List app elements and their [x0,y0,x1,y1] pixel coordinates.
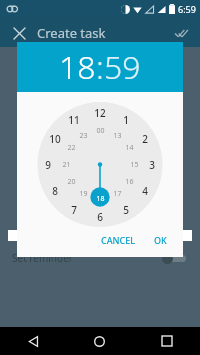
staticText: 18 [59,45,96,89]
staticText: 6:59 [178,3,196,15]
staticText: 20 [67,177,76,187]
staticText: CANCEL [101,234,136,246]
staticText: 13 [113,131,122,141]
staticText: 10 [49,132,61,146]
button[interactable]: 12 [35,102,165,227]
staticText: 18 [96,194,105,204]
staticText: 5 [123,203,129,217]
staticText: 12 [94,106,106,120]
button[interactable]: Done [170,22,192,44]
staticText: 59 [104,45,141,89]
button[interactable]: Recents [133,327,200,355]
staticText: 1 [123,113,129,127]
staticText: 17 [113,189,122,199]
staticText: 2 [142,132,148,146]
staticText: 19 [79,189,88,199]
staticText: 6 [97,210,103,224]
button[interactable]: 18 [59,45,96,89]
staticText: 9 [45,158,51,172]
staticText: Set reminder [12,251,73,265]
staticText: 7 [71,203,77,217]
button[interactable]: Home [66,327,133,355]
staticText: 8 [52,184,58,198]
staticText: 14 [125,143,134,153]
staticText: 21 [62,160,71,170]
staticText: 16 [125,177,134,187]
staticText: 4 [142,184,148,198]
button[interactable]: CANCEL [95,231,142,249]
staticText: 11 [68,113,80,127]
staticText: Create task [37,24,106,42]
button[interactable]: 59 [104,45,141,89]
button[interactable]: Set reminder [0,247,200,269]
button[interactable]: Back [0,327,66,355]
staticText: 3 [149,158,155,172]
staticText: 00 [96,126,105,136]
staticText: 15 [130,160,139,170]
staticText: 22 [67,143,76,153]
staticText: OK [154,234,167,246]
button[interactable]: OK [148,231,173,249]
staticText: : [96,45,104,89]
staticText: 23 [79,131,88,141]
button[interactable]: Create task [37,24,170,42]
button[interactable]: Close [8,22,30,44]
